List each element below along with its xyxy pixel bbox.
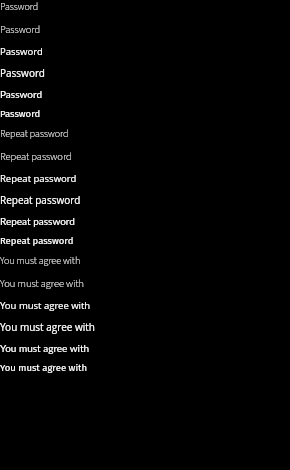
staticText: You must agree with — [0, 276, 85, 291]
staticText: Password — [0, 88, 42, 100]
staticText: Password — [0, 0, 39, 14]
staticText: You must agree with — [0, 362, 88, 373]
staticText: Password — [0, 108, 41, 119]
staticText: Password — [0, 22, 41, 37]
staticText: You must agree with — [0, 299, 91, 312]
staticText: Repeat password — [0, 149, 72, 164]
staticText: Repeat password — [0, 127, 69, 141]
staticText: You must agree with — [0, 342, 90, 354]
staticText: Repeat password — [0, 215, 75, 227]
staticText: You must agree with — [0, 320, 95, 334]
staticText: Repeat password — [0, 172, 77, 185]
staticText: Repeat password — [0, 193, 81, 207]
staticText: Repeat password — [0, 235, 74, 246]
staticText: Password — [0, 45, 43, 58]
staticText: Password — [0, 66, 45, 80]
staticText: You must agree with — [0, 254, 81, 268]
